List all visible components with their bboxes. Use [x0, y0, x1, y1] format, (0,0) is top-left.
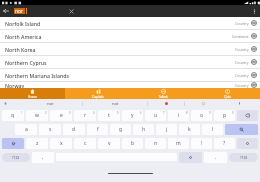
button[interactable]: x: [50, 138, 72, 149]
staticText: Home: [28, 95, 37, 99]
staticText: Country: [235, 83, 249, 88]
button[interactable]: e: [50, 110, 72, 121]
button[interactable]: a: [15, 124, 37, 135]
staticText: r: [84, 112, 87, 119]
button[interactable]: Norfolk Island: [0, 17, 260, 29]
button[interactable]: North America: [0, 30, 260, 42]
staticText: q: [11, 112, 15, 119]
staticText: Norfolk Island: [5, 20, 41, 27]
button[interactable]: Tallest: [130, 88, 195, 99]
button[interactable]: g: [110, 124, 131, 135]
staticText: x: [60, 140, 63, 147]
button[interactable]: Voice input: [221, 102, 257, 105]
button[interactable]: Settings: [237, 138, 258, 149]
staticText: Capitals: [92, 95, 104, 99]
staticText: u: [154, 112, 158, 119]
staticText: Country: [235, 60, 249, 65]
staticText: Norway: [5, 82, 25, 88]
staticText: Country: [235, 73, 249, 78]
staticText: k: [188, 126, 191, 133]
button[interactable]: Capitals: [65, 88, 130, 99]
staticText: j: [166, 126, 168, 133]
button[interactable]: v: [98, 138, 120, 149]
staticText: n: [154, 140, 158, 147]
staticText: ?: [223, 140, 226, 147]
button[interactable]: Shift: [2, 138, 24, 149]
staticText: s: [49, 126, 52, 133]
button[interactable]: i: [168, 110, 189, 121]
button[interactable]: Emoji keyboard: [179, 152, 202, 163]
staticText: Country: [235, 47, 249, 52]
button[interactable]: y: [122, 110, 143, 121]
button[interactable]: d: [63, 124, 85, 135]
staticText: 3: [69, 111, 71, 115]
button[interactable]: Voice assistant: [3, 101, 8, 106]
staticText: Country: [235, 21, 249, 26]
staticText: t: [108, 112, 110, 119]
button[interactable]: c: [74, 138, 96, 149]
button[interactable]: Quiz: [195, 88, 260, 99]
staticText: p: [223, 112, 227, 119]
staticText: h: [142, 126, 146, 133]
button[interactable]: More options: [248, 5, 260, 17]
button[interactable]: nor: [12, 5, 65, 17]
staticText: f: [97, 126, 99, 133]
button[interactable]: .: [204, 152, 227, 163]
button[interactable]: m: [168, 138, 189, 149]
staticText: b: [131, 140, 135, 147]
staticText: nor: [15, 8, 24, 14]
staticText: g: [119, 126, 123, 133]
button[interactable]: Search: [225, 124, 258, 135]
button[interactable]: w: [26, 110, 48, 121]
staticText: !: [201, 140, 203, 147]
button[interactable]: n: [145, 138, 166, 149]
button[interactable]: l: [202, 124, 223, 135]
button[interactable]: Northern Cyprus: [0, 56, 260, 68]
staticText: e: [60, 112, 63, 119]
button[interactable]: b: [122, 138, 143, 149]
staticText: ,: [42, 154, 44, 161]
button[interactable]: z: [26, 138, 48, 149]
staticText: c: [84, 140, 87, 147]
button[interactable]: ?123: [229, 153, 258, 162]
button[interactable]: nor: [18, 101, 82, 107]
button[interactable]: u: [145, 110, 166, 121]
staticText: i: [178, 112, 180, 119]
button[interactable]: Emoji: [148, 102, 184, 105]
button[interactable]: Home: [0, 88, 65, 99]
button[interactable]: Norway: [0, 82, 260, 88]
button[interactable]: h: [133, 124, 154, 135]
button[interactable]: not: [83, 101, 147, 107]
button[interactable]: k: [179, 124, 200, 135]
staticText: 5: [117, 111, 119, 115]
staticText: 9: [209, 111, 211, 115]
button[interactable]: ?123: [2, 153, 30, 162]
button[interactable]: p: [214, 110, 235, 121]
staticText: 6: [140, 111, 142, 115]
staticText: North America: [5, 33, 42, 40]
staticText: 8: [186, 111, 188, 115]
button[interactable]: ?: [214, 138, 235, 149]
button[interactable]: Northern Mariana Islands: [0, 69, 260, 81]
button[interactable]: ,: [32, 152, 54, 163]
staticText: ?123: [12, 155, 20, 160]
button[interactable]: !: [191, 138, 212, 149]
button[interactable]: Sticker: [185, 102, 221, 105]
button[interactable]: r: [74, 110, 96, 121]
button[interactable]: Back: [0, 5, 12, 17]
staticText: not: [112, 101, 119, 107]
staticText: z: [36, 140, 39, 147]
button[interactable]: s: [39, 124, 61, 135]
button[interactable]: Clear search: [65, 5, 77, 17]
button[interactable]: j: [156, 124, 177, 135]
staticText: l: [212, 126, 214, 133]
button[interactable]: North Korea: [0, 43, 260, 55]
button[interactable]: f: [87, 124, 108, 135]
button[interactable]: Backspace: [237, 110, 258, 121]
button[interactable]: q: [2, 110, 24, 121]
button[interactable]: o: [191, 110, 212, 121]
staticText: .: [215, 154, 217, 161]
staticText: ?123: [240, 155, 248, 160]
button[interactable]: t: [98, 110, 120, 121]
